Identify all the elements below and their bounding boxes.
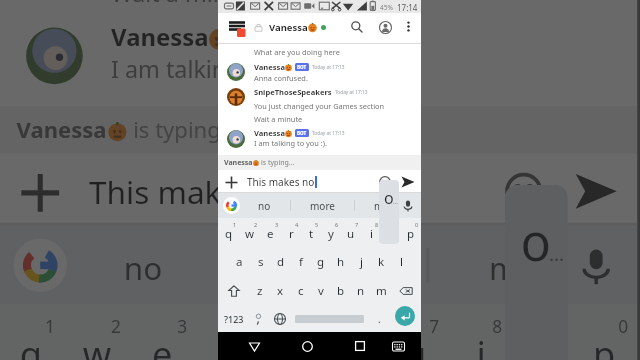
staticText: p bbox=[407, 226, 415, 242]
button[interactable]: e bbox=[260, 218, 281, 247]
button[interactable]: t bbox=[259, 305, 322, 360]
staticText: s bbox=[258, 254, 264, 270]
button[interactable]: . bbox=[370, 305, 388, 332]
staticText: y bbox=[328, 226, 334, 242]
staticText: 7 bbox=[355, 221, 359, 228]
staticText: w bbox=[245, 226, 255, 242]
staticText: BOT bbox=[297, 130, 307, 136]
button[interactable]: no bbox=[258, 199, 271, 213]
button[interactable]: Emoji bbox=[376, 173, 394, 191]
button[interactable]: d bbox=[271, 247, 291, 276]
staticText: 7 bbox=[429, 314, 442, 336]
button[interactable]: u bbox=[385, 305, 448, 360]
staticText: l bbox=[400, 254, 403, 270]
button[interactable]: Shift bbox=[218, 276, 249, 305]
staticText: Today at 17:13 bbox=[312, 130, 345, 137]
button[interactable]: Members bbox=[375, 17, 395, 37]
button[interactable]: Back bbox=[244, 336, 264, 356]
button[interactable]: Voice input bbox=[400, 198, 416, 214]
button[interactable]: more bbox=[310, 199, 335, 213]
staticText: 3 bbox=[177, 314, 190, 336]
button[interactable]: i bbox=[361, 218, 381, 247]
staticText: 4 bbox=[240, 314, 253, 336]
button[interactable]: s bbox=[250, 247, 271, 276]
button[interactable]: Change language bbox=[270, 305, 289, 332]
button[interactable]: q bbox=[218, 218, 239, 247]
button[interactable]: n bbox=[351, 276, 371, 305]
staticText: w bbox=[83, 330, 114, 360]
button[interactable]: Voice input bbox=[571, 242, 621, 292]
button[interactable]: Send message bbox=[565, 160, 628, 223]
staticText: 1 bbox=[45, 314, 58, 336]
button[interactable]: Space bbox=[289, 305, 369, 332]
button[interactable]: Emoji bbox=[495, 163, 552, 220]
button[interactable]: Emoji keyboard bbox=[249, 305, 268, 332]
button[interactable]: Google bbox=[13, 239, 67, 292]
staticText: Vanessa bbox=[224, 158, 253, 168]
button[interactable]: Search bbox=[347, 17, 367, 37]
button[interactable]: f bbox=[291, 247, 311, 276]
button[interactable]: c bbox=[291, 276, 311, 305]
button[interactable]: l bbox=[391, 247, 411, 276]
button[interactable]: Backspace bbox=[391, 276, 421, 305]
button[interactable]: more bbox=[287, 245, 366, 289]
staticText: 8 bbox=[375, 221, 379, 228]
button[interactable]: u bbox=[341, 218, 361, 247]
staticText: You just changed your Games section bbox=[254, 101, 385, 111]
button[interactable]: v bbox=[311, 276, 331, 305]
button[interactable]: Home bbox=[297, 336, 317, 356]
staticText: k bbox=[378, 254, 385, 270]
button[interactable]: p bbox=[574, 305, 637, 360]
button[interactable]: x bbox=[270, 276, 291, 305]
button[interactable]: r bbox=[196, 305, 259, 360]
staticText: c bbox=[298, 283, 304, 299]
staticText: ... bbox=[549, 242, 565, 267]
button[interactable]: Enter bbox=[395, 306, 415, 326]
button[interactable]: Recents bbox=[350, 336, 370, 356]
staticText: ... bbox=[393, 198, 398, 206]
button[interactable]: y bbox=[321, 218, 341, 247]
button[interactable]: k bbox=[371, 247, 391, 276]
button[interactable]: t bbox=[301, 218, 321, 247]
button[interactable]: me bbox=[489, 245, 536, 289]
button[interactable]: Send message bbox=[398, 172, 418, 192]
button[interactable]: me bbox=[374, 199, 389, 213]
staticText: This makes no bbox=[247, 175, 315, 189]
button[interactable]: z bbox=[249, 276, 270, 305]
button[interactable]: b bbox=[331, 276, 351, 305]
button[interactable]: g bbox=[311, 247, 331, 276]
staticText: t bbox=[284, 330, 300, 360]
button[interactable]: j bbox=[351, 247, 371, 276]
staticText: j bbox=[360, 254, 363, 270]
staticText: e bbox=[152, 330, 174, 360]
button[interactable]: m bbox=[371, 276, 391, 305]
staticText: o bbox=[384, 187, 394, 209]
button[interactable]: e bbox=[130, 305, 196, 360]
button[interactable]: q bbox=[0, 305, 64, 360]
staticText: 6 bbox=[335, 221, 339, 228]
staticText: 3 bbox=[275, 221, 279, 228]
staticText: p bbox=[593, 330, 618, 360]
button[interactable]: ?123 bbox=[222, 305, 246, 332]
button[interactable]: Google bbox=[223, 197, 240, 214]
button[interactable]: p bbox=[401, 218, 421, 247]
button[interactable]: Switch keyboard bbox=[388, 336, 408, 356]
button[interactable]: Add attachment bbox=[222, 173, 240, 191]
button[interactable]: w bbox=[239, 218, 260, 247]
button[interactable]: w bbox=[64, 305, 130, 360]
staticText: g bbox=[317, 254, 325, 270]
button[interactable]: o bbox=[381, 218, 401, 247]
button[interactable]: Add attachment bbox=[10, 163, 67, 220]
button[interactable]: i bbox=[448, 305, 511, 360]
staticText: 8 bbox=[492, 314, 505, 336]
button[interactable]: More options bbox=[399, 17, 417, 35]
staticText: ?123 bbox=[224, 313, 244, 325]
button[interactable]: no bbox=[124, 245, 165, 289]
button[interactable]: y bbox=[322, 305, 385, 360]
button[interactable]: h bbox=[331, 247, 351, 276]
button[interactable]: a bbox=[229, 247, 250, 276]
button[interactable]: r bbox=[281, 218, 301, 247]
button[interactable]: Open navigation menu bbox=[223, 16, 247, 40]
